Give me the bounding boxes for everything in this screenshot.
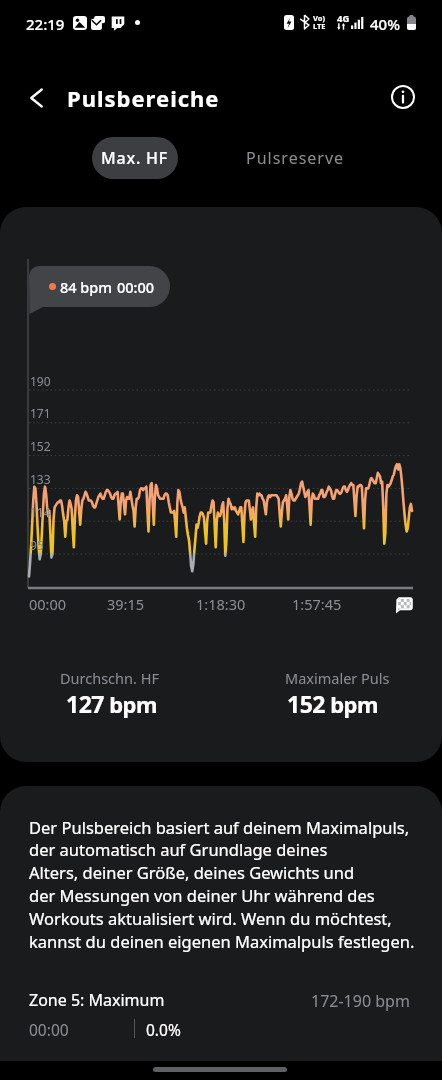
- staticText: LTE: [313, 21, 326, 31]
- staticText: 00:00: [29, 594, 67, 614]
- staticText: 00:00: [29, 1019, 69, 1040]
- staticText: 84 bpm: [60, 277, 113, 297]
- staticText: 172-190 bpm: [311, 990, 410, 1012]
- button[interactable]: Back: [17, 80, 53, 116]
- staticText: Durchschn. HF: [60, 668, 159, 688]
- staticText: 114: [30, 504, 51, 520]
- staticText: 40%: [370, 14, 400, 34]
- staticText: 152: [30, 438, 51, 454]
- staticText: 95: [30, 537, 44, 553]
- staticText: 133: [30, 471, 51, 487]
- button[interactable]: Max. HF: [92, 137, 178, 179]
- staticText: bpm: [325, 689, 378, 719]
- staticText: 1:18:30: [196, 594, 246, 614]
- staticText: Vo): [313, 13, 325, 23]
- staticText: 171: [30, 405, 51, 421]
- staticText: 22:19: [26, 14, 65, 34]
- staticText: Pulsreserve: [246, 147, 345, 169]
- button[interactable]: Workout finish marker: [394, 596, 414, 614]
- staticText: Maximaler Puls: [285, 668, 390, 688]
- staticText: 1:57:45: [292, 594, 342, 614]
- staticText: 0.0%: [146, 1019, 181, 1040]
- staticText: 152: [287, 688, 325, 719]
- staticText: Pulsbereiche: [67, 83, 220, 113]
- staticText: Der Pulsbereich basiert auf deinem Maxim…: [29, 816, 415, 952]
- staticText: bpm: [104, 689, 157, 719]
- staticText: 4G: [337, 12, 350, 25]
- button[interactable]: Information: [388, 82, 418, 112]
- staticText: 190: [30, 373, 51, 389]
- staticText: Max. HF: [101, 147, 169, 169]
- button[interactable]: Pulsreserve: [228, 137, 362, 179]
- staticText: 39:15: [107, 594, 145, 614]
- staticText: Zone 5: Maximum: [29, 989, 165, 1011]
- staticText: 127: [66, 688, 104, 719]
- staticText: 00:00: [117, 277, 155, 297]
